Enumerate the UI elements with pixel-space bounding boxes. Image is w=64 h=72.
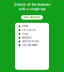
staticText: Help and support <box>22 44 39 47</box>
button[interactable]: Account <box>15 24 49 28</box>
button[interactable]: Help and support <box>15 43 49 47</box>
staticText: Subscription plan <box>22 40 39 43</box>
button[interactable]: Notifications <box>15 28 49 32</box>
staticText: Privacy <box>22 33 29 35</box>
staticText: Get started <box>24 16 40 19</box>
staticText: with a single tap <box>18 7 45 11</box>
button[interactable]: Get started <box>21 15 43 20</box>
staticText: Appearance <box>22 36 32 39</box>
button[interactable]: Privacy <box>15 32 49 36</box>
button[interactable]: Subscription plan <box>15 40 49 43</box>
staticText: Unlock all the features <box>13 2 50 7</box>
staticText: Notifications <box>22 29 36 31</box>
button[interactable]: Appearance <box>15 36 49 40</box>
staticText: Account <box>22 25 29 28</box>
